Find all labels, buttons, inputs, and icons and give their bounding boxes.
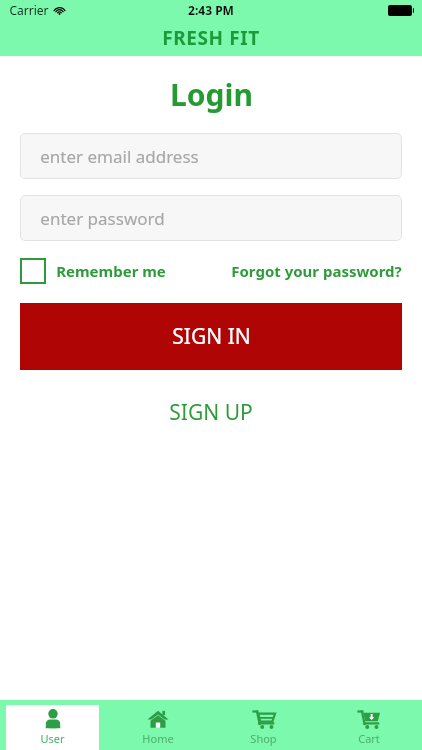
button[interactable]: enter password bbox=[20, 195, 402, 241]
staticText: User bbox=[40, 731, 65, 746]
staticText: Shop bbox=[250, 731, 277, 746]
button[interactable]: enter email address bbox=[20, 133, 402, 179]
staticText: Carrier bbox=[9, 2, 49, 18]
button[interactable]: Forgot your password? bbox=[231, 261, 402, 281]
staticText: Login bbox=[170, 74, 253, 115]
button[interactable]: User bbox=[6, 705, 99, 750]
button[interactable]: Remember me bbox=[20, 258, 166, 284]
staticText: enter email address bbox=[40, 145, 199, 168]
staticText: enter password bbox=[40, 207, 165, 230]
button[interactable]: Shop bbox=[216, 705, 310, 750]
staticText: Remember me bbox=[56, 261, 166, 281]
staticText: 2:43 PM bbox=[188, 2, 234, 18]
staticText: Cart bbox=[358, 731, 380, 746]
button[interactable]: Home bbox=[111, 705, 204, 750]
staticText: Forgot your password? bbox=[231, 261, 402, 281]
staticText: FRESH FIT bbox=[162, 25, 260, 51]
staticText: SIGN UP bbox=[169, 398, 253, 427]
button[interactable]: SIGN IN bbox=[20, 303, 402, 370]
button[interactable]: Cart bbox=[322, 705, 416, 750]
staticText: SIGN IN bbox=[172, 322, 251, 351]
staticText: Home bbox=[142, 731, 174, 746]
button[interactable]: SIGN UP bbox=[157, 394, 265, 431]
